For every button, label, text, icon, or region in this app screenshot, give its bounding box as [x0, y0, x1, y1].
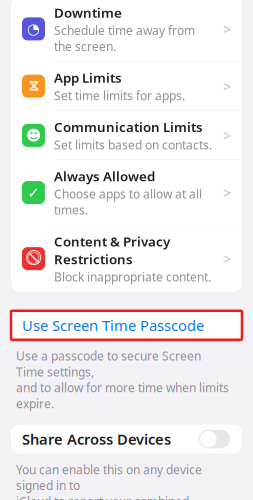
staticText: Downtime [54, 4, 122, 21]
button[interactable]: Share Across Devices [198, 428, 231, 450]
staticText: ⧖ [28, 79, 38, 93]
button[interactable]: Use Screen Time Passcode [11, 311, 242, 340]
staticText: Block inappropriate content. [54, 269, 211, 285]
staticText: Set limits based on contacts. [54, 137, 212, 153]
staticText: ✓ [27, 184, 39, 201]
staticText: Communication Limits [54, 118, 203, 136]
staticText: Share Across Devices [22, 429, 171, 449]
staticText: > [223, 183, 231, 202]
staticText: Choose apps to allow at all times. [54, 186, 202, 218]
staticText: Use Screen Time Passcode [22, 316, 204, 335]
staticText: ☻ [26, 127, 41, 144]
staticText: ◔ [27, 21, 40, 37]
staticText: > [223, 19, 231, 39]
staticText: > [223, 126, 231, 145]
button[interactable]: ☻ [11, 111, 242, 160]
staticText: Set time limits for apps. [54, 87, 185, 103]
staticText: > [223, 249, 231, 268]
staticText: > [223, 76, 231, 96]
staticText: Schedule time away from the screen. [54, 22, 195, 54]
staticText: Content & Privacy Restrictions [54, 232, 170, 268]
staticText: You can enable this on any device signed… [16, 462, 202, 500]
staticText: ⃠ [27, 251, 40, 266]
staticText: App Limits [54, 69, 122, 86]
button[interactable]: ⃠ [11, 225, 242, 292]
staticText: Always Allowed [54, 167, 155, 185]
button[interactable]: ✓ [11, 160, 242, 225]
staticText: Use a passcode to secure Screen Time set… [16, 348, 229, 411]
button[interactable]: ⧖ [11, 62, 242, 110]
button[interactable]: ◔ [11, 0, 242, 61]
